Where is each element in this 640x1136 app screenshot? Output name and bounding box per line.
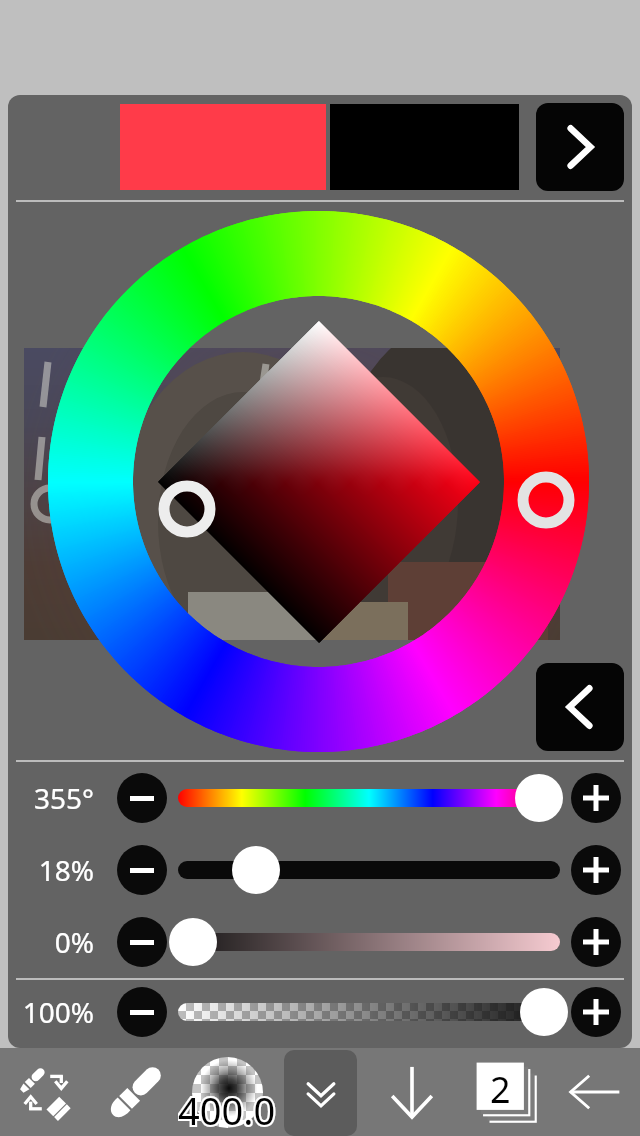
button[interactable]: Decrease 18% [117,845,167,895]
button[interactable]: 0% slider [178,933,560,951]
staticText: 100% [22,993,94,1031]
button[interactable]: Import [368,1048,456,1136]
button[interactable]: 355° value [515,774,563,822]
staticText: 2 [490,1065,511,1114]
button[interactable]: 100% slider [178,1003,560,1021]
button[interactable]: 18% value [232,846,280,894]
button[interactable]: Brush [90,1048,182,1136]
button[interactable]: Decrease 0% [117,917,167,967]
button[interactable]: Brush size 400.0 [192,1057,263,1128]
button[interactable]: Collapse panel [284,1050,357,1136]
button[interactable]: Increase 100% [571,987,621,1037]
button[interactable]: Switch pen and eraser [0,1048,92,1136]
button[interactable]: Increase 18% [571,845,621,895]
button[interactable]: Back [550,1048,640,1136]
staticText: 400.0 [178,1084,276,1128]
button[interactable]: Increase 355° [571,773,621,823]
staticText: 0% [54,923,94,961]
staticText: 355° [33,779,94,817]
button[interactable]: Layers, 2 layers [467,1053,555,1136]
button[interactable]: Decrease 355° [117,773,167,823]
button[interactable]: 355° slider [178,789,560,807]
button[interactable]: 18% slider [178,861,560,879]
button[interactable]: 100% value [520,988,568,1036]
staticText: 400.0 [178,1084,276,1128]
button[interactable]: Back [536,663,624,751]
button[interactable]: Next [536,103,624,191]
button[interactable]: 0% value [169,918,217,966]
button[interactable]: Increase 0% [571,917,621,967]
button[interactable]: Decrease 100% [117,987,167,1037]
staticText: 18% [38,851,94,889]
